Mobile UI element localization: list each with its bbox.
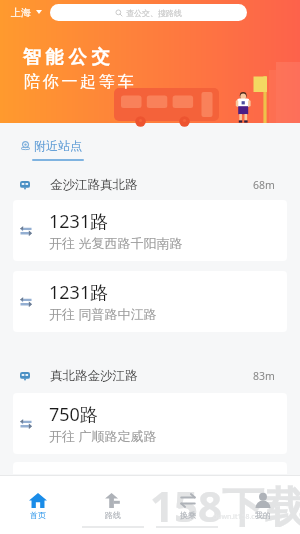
staticText: 750路 bbox=[49, 402, 98, 427]
button[interactable]: 我的 bbox=[225, 493, 300, 520]
staticText: 1231路 bbox=[49, 280, 109, 305]
staticText: 真北路金沙江路 bbox=[50, 368, 138, 384]
button[interactable]: 换乘 bbox=[150, 493, 225, 520]
other: Bus stop bbox=[20, 181, 30, 190]
staticText: 金沙江路真北路 bbox=[50, 177, 138, 193]
staticText: 陪你一起等车 bbox=[24, 72, 137, 92]
button[interactable]: Bus stop bbox=[0, 363, 300, 389]
staticText: 路线 bbox=[105, 510, 121, 520]
button[interactable]: 1231路 bbox=[13, 200, 287, 261]
staticText: 158下载 bbox=[150, 477, 300, 534]
staticText: 68m bbox=[253, 178, 275, 192]
button[interactable]: 1231路 bbox=[13, 271, 287, 332]
staticText: 开往 广顺路定威路 bbox=[49, 427, 157, 445]
staticText: 换乘 bbox=[180, 510, 196, 520]
staticText: 开往 同普路中江路 bbox=[49, 305, 157, 323]
staticText: 首页 bbox=[30, 510, 46, 520]
button[interactable]: 上海 bbox=[11, 4, 42, 20]
button[interactable]: 附近站点 bbox=[21, 138, 82, 153]
staticText: 查公交、搜路线 bbox=[126, 8, 182, 18]
button[interactable]: 路线 bbox=[75, 493, 150, 520]
staticText: down.it158.com bbox=[213, 512, 266, 522]
staticText: 83m bbox=[253, 369, 275, 383]
staticText: 开往 光复西路千阳南路 bbox=[49, 234, 183, 252]
staticText: 智能公交 bbox=[20, 46, 112, 69]
button[interactable]: 查公交、搜路线 bbox=[50, 4, 247, 21]
other: Bus stop bbox=[20, 372, 30, 381]
staticText: 1231路 bbox=[49, 209, 109, 234]
staticText: 上海 bbox=[11, 6, 31, 19]
staticText: 我的 bbox=[255, 510, 271, 520]
button[interactable]: 首页 bbox=[0, 493, 75, 520]
button[interactable]: Bus stop bbox=[0, 172, 300, 198]
button[interactable]: 750路 bbox=[13, 393, 287, 454]
staticText: 附近站点 bbox=[34, 138, 82, 153]
